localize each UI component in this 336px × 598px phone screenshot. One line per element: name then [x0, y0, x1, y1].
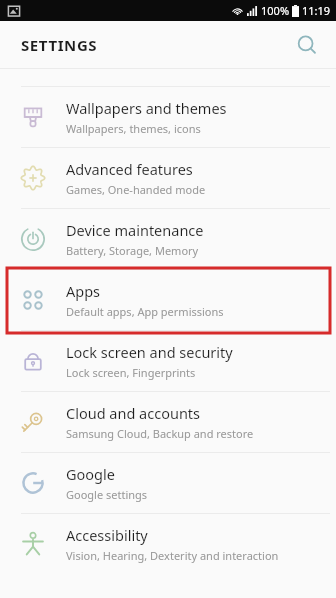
button[interactable]: Apps	[0, 270, 336, 331]
staticText: SETTINGS	[21, 35, 98, 55]
button[interactable]: Google	[0, 453, 336, 514]
staticText: Lock screen and security	[66, 342, 233, 362]
button[interactable]: Wallpapers and themes	[0, 87, 336, 148]
staticText: Games, One-handed mode	[66, 182, 206, 197]
button[interactable]: Device maintenance	[0, 209, 336, 270]
button[interactable]: Lock screen and security	[0, 331, 336, 392]
staticText: Cloud and accounts	[66, 403, 201, 423]
staticText: Wallpapers, themes, icons	[66, 121, 201, 136]
staticText: Google settings	[66, 487, 148, 502]
staticText: Accessibility	[66, 525, 148, 545]
staticText: Wallpapers and themes	[66, 98, 227, 118]
staticText: Battery, Storage, Memory	[66, 243, 199, 258]
staticText: Google	[66, 464, 115, 484]
staticText: Default apps, App permissions	[66, 304, 224, 319]
button[interactable]: Cloud and accounts	[0, 392, 336, 453]
button[interactable]: Advanced features	[0, 148, 336, 209]
staticText: Apps	[66, 281, 101, 301]
staticText: Lock screen, Fingerprints	[66, 365, 196, 380]
staticText: Vision, Hearing, Dexterity and interacti…	[66, 548, 279, 563]
staticText: 100%	[261, 3, 290, 18]
staticText: Device maintenance	[66, 220, 204, 240]
staticText: Advanced features	[66, 159, 193, 179]
button[interactable]: Search	[291, 29, 323, 61]
staticText: 11:19	[302, 3, 331, 18]
button[interactable]: Accessibility	[0, 514, 336, 574]
staticText: Samsung Cloud, Backup and restore	[66, 426, 254, 441]
